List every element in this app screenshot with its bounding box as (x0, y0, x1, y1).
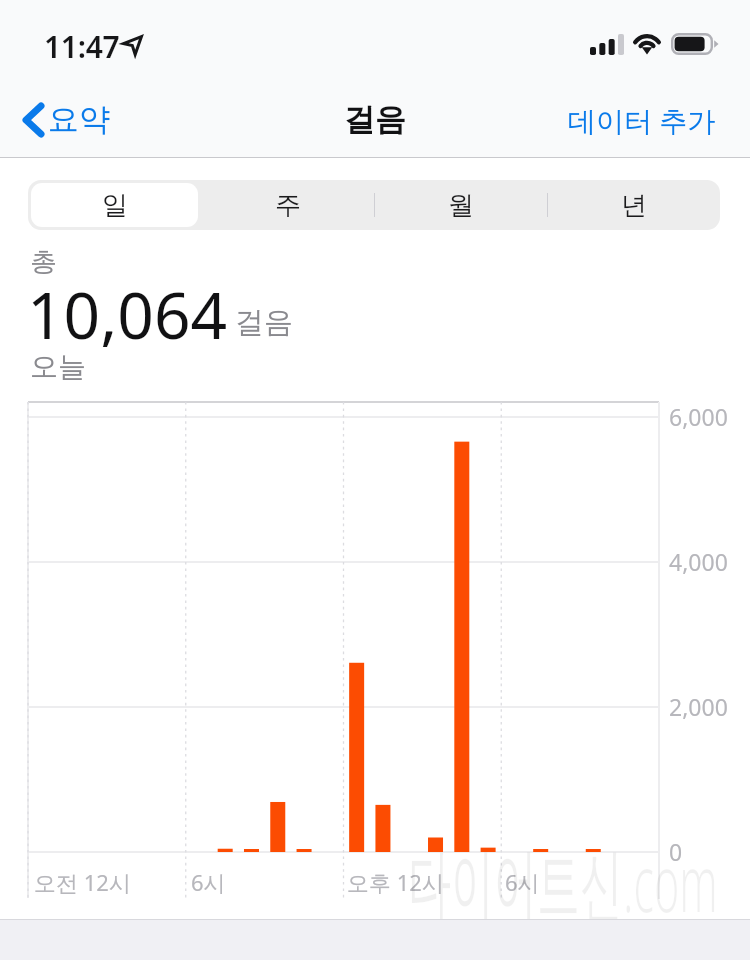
button[interactable]: 요약 (22, 100, 110, 139)
staticText: 총 (30, 245, 57, 279)
button[interactable]: 주 (201, 180, 374, 230)
staticText: 6시 (191, 867, 226, 897)
button[interactable]: 일 (28, 180, 201, 230)
staticText: 데이터 추가 (568, 101, 716, 139)
staticText: 10,064 (27, 271, 228, 358)
staticText: 년 (621, 189, 647, 222)
staticText: 걸음 (235, 304, 293, 341)
staticText: 오후 12시 (347, 867, 444, 897)
staticText: 오늘 (30, 349, 86, 384)
staticText: 일 (102, 189, 128, 222)
staticText: 요약 (48, 100, 110, 139)
staticText: 2,000 (669, 691, 728, 722)
staticText: 11:47 (44, 26, 120, 67)
button[interactable]: 월 (374, 180, 547, 230)
staticText: 0 (669, 836, 683, 867)
staticText: 오전 12시 (34, 867, 131, 897)
staticText: 다이어트신.com (408, 827, 718, 936)
button[interactable]: 데이터 추가 (568, 101, 716, 139)
button[interactable]: 년 (547, 180, 720, 230)
staticText: 6시 (505, 867, 540, 897)
staticText: 6,000 (669, 401, 728, 432)
staticText: 걸음 (344, 100, 406, 139)
staticText: 4,000 (669, 546, 728, 577)
staticText: 월 (448, 189, 474, 222)
staticText: 주 (275, 189, 301, 222)
